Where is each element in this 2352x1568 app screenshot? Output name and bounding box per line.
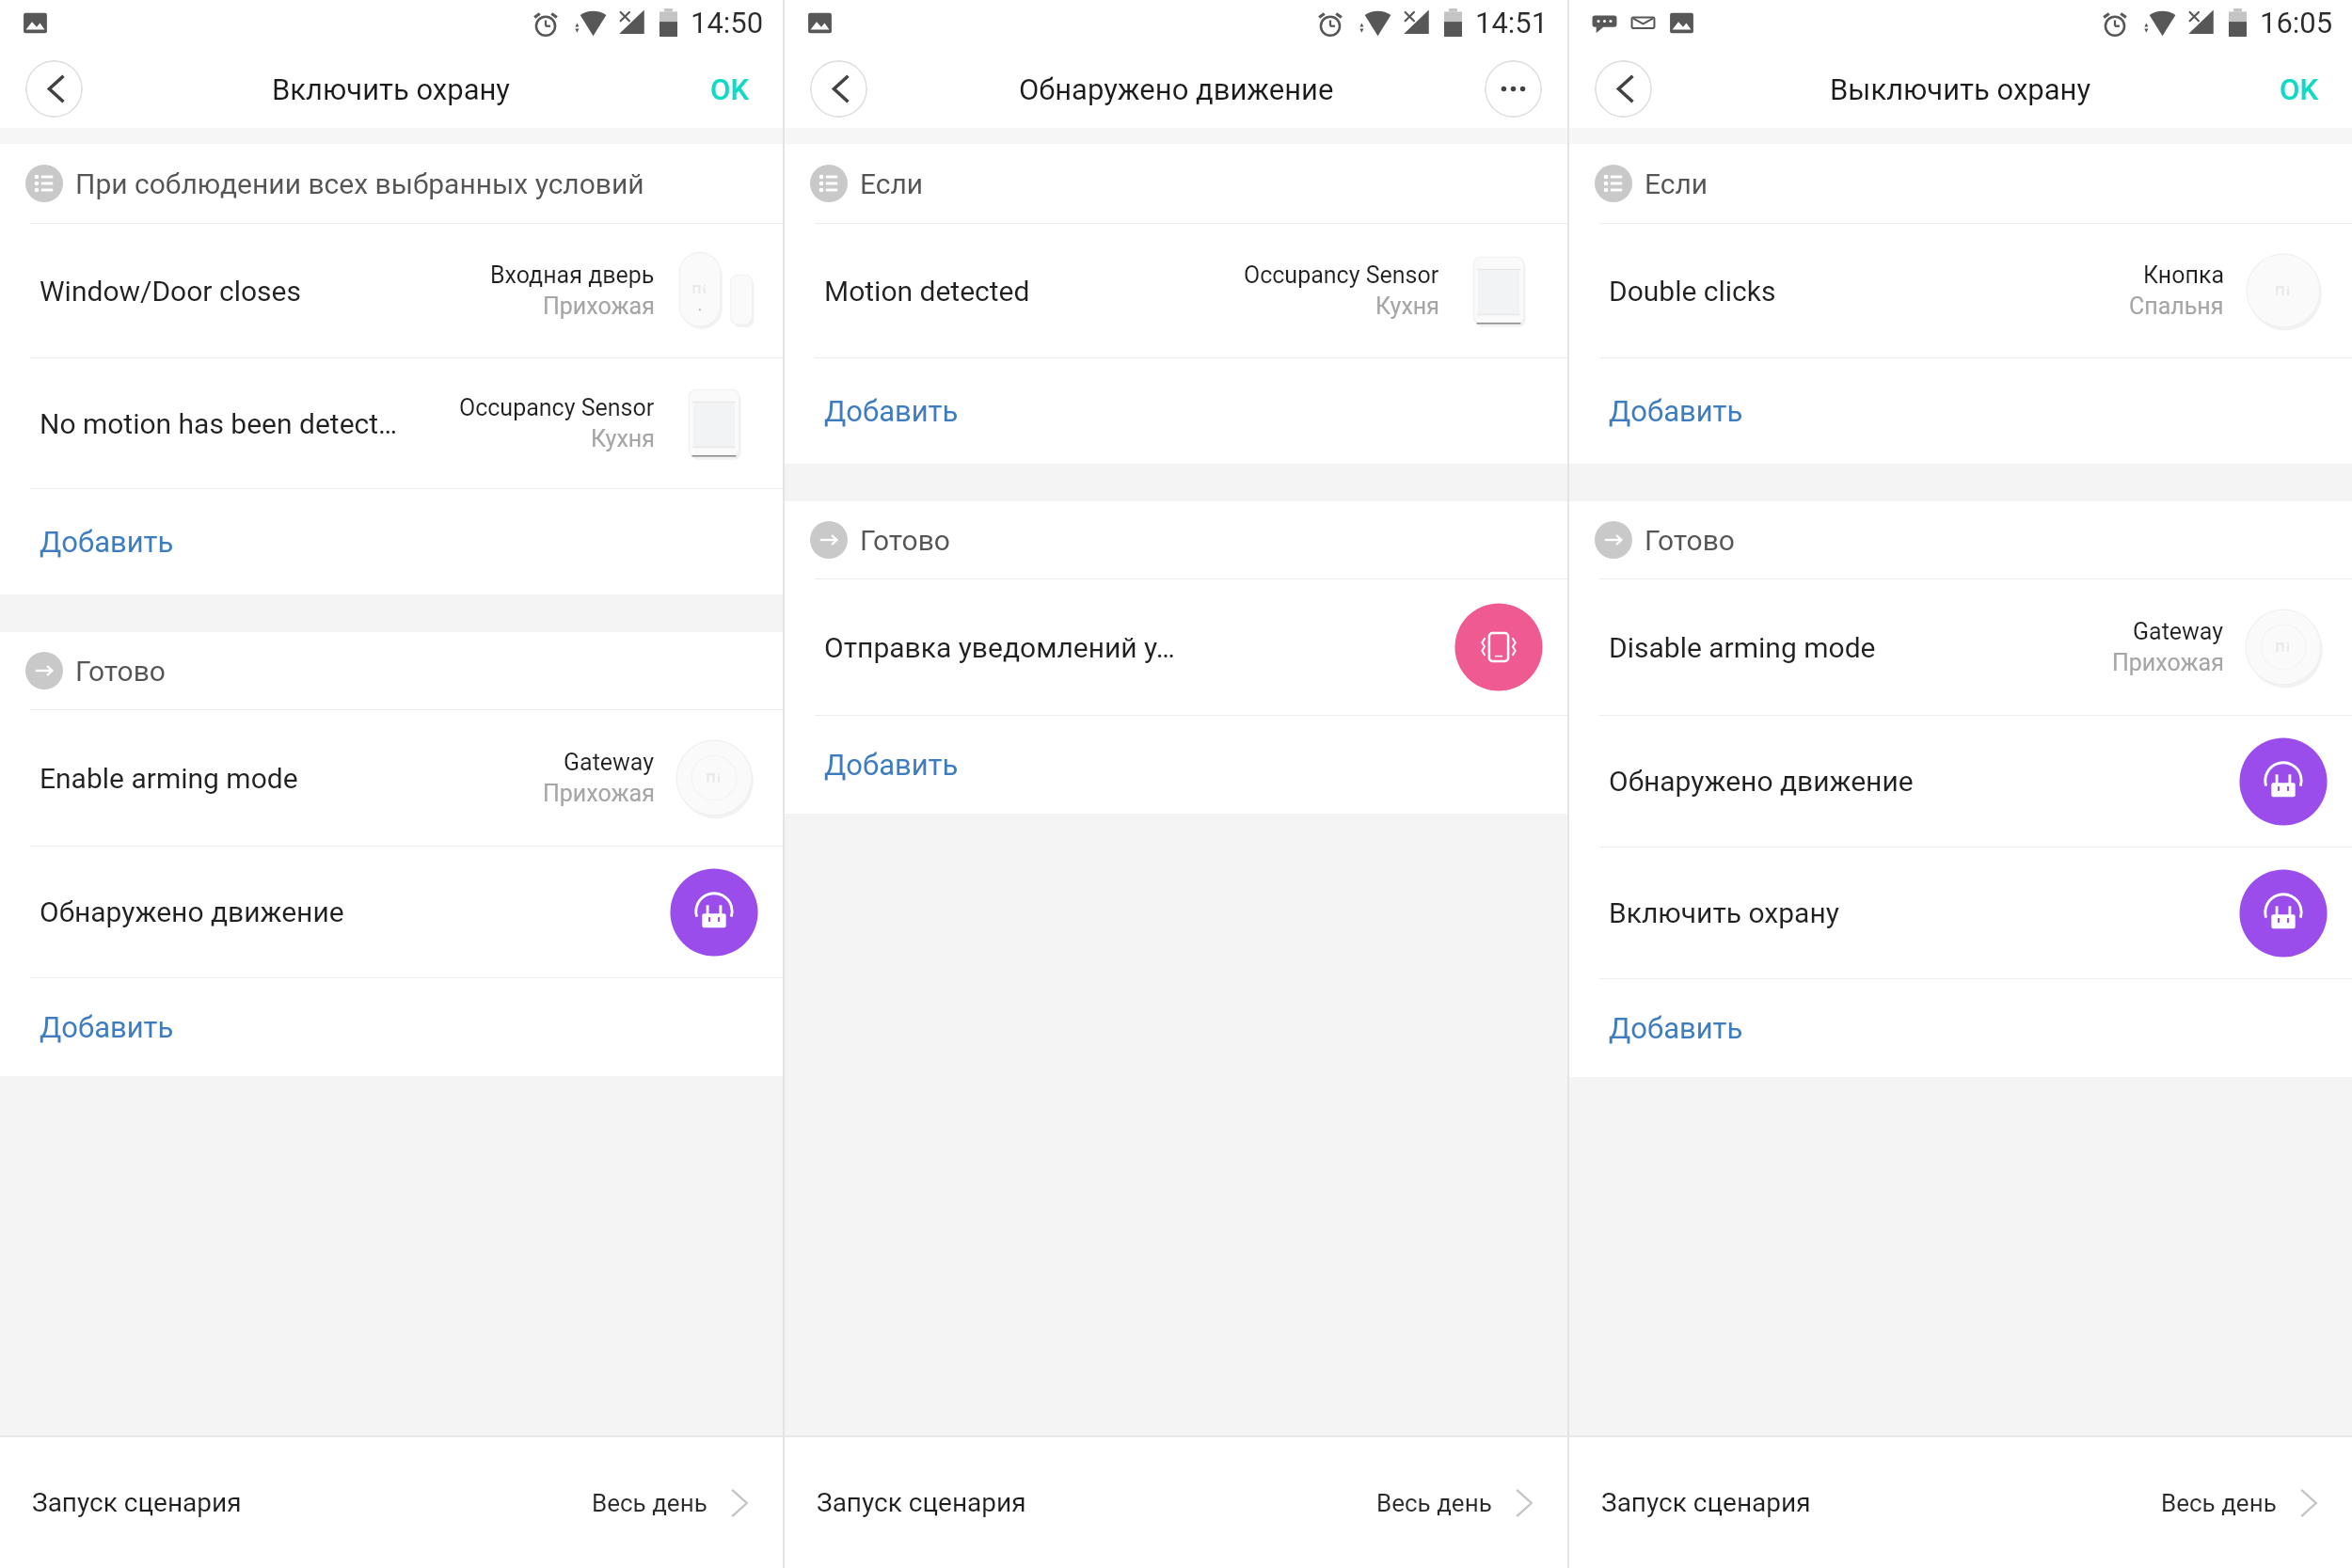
staticText: Добавить (824, 748, 959, 782)
button[interactable]: Back (25, 60, 83, 118)
staticText: Прихожая (543, 293, 655, 320)
button[interactable]: Обнаружено движение (1569, 716, 2352, 847)
button[interactable]: Window/Door closes (0, 224, 783, 357)
button[interactable]: Добавить (0, 978, 783, 1076)
staticText: Обнаружено движение (1609, 765, 1914, 798)
staticText: Запуск сценария (1601, 1487, 1811, 1518)
button[interactable]: Готово (1569, 501, 2352, 578)
button[interactable]: Back (1595, 60, 1652, 118)
staticText: Occupancy Sensor (1244, 261, 1439, 289)
button[interactable]: Если (785, 144, 1567, 223)
staticText: Прихожая (543, 780, 655, 807)
staticText: Кухня (1375, 293, 1439, 320)
button[interactable]: Включить охрану (1569, 847, 2352, 978)
button[interactable]: При соблюдении всех выбранных условий (0, 144, 783, 223)
staticText: Выключить охрану (1830, 72, 2091, 106)
button[interactable]: Готово (0, 632, 783, 709)
staticText: 14:50 (691, 6, 764, 40)
button[interactable]: Back (810, 60, 867, 118)
button[interactable]: Обнаружено движение (0, 847, 783, 977)
button[interactable]: Добавить (785, 358, 1567, 464)
staticText: Enable arming mode (40, 762, 298, 795)
staticText: Кухня (591, 425, 655, 452)
staticText: Обнаружено движение (1019, 72, 1334, 106)
staticText: 16:05 (2260, 6, 2333, 40)
staticText: Motion detected (824, 275, 1030, 308)
staticText: Добавить (40, 525, 174, 559)
button[interactable]: Double clicks (1569, 224, 2352, 357)
staticText: Кнопка (2143, 261, 2224, 289)
button[interactable]: Запуск сценария (785, 1437, 1567, 1568)
staticText: Включить охрану (272, 72, 511, 106)
button[interactable]: Отправка уведомлений у… (785, 579, 1567, 715)
staticText: Occupancy Sensor (459, 394, 655, 421)
staticText: Включить охрану (1609, 896, 1839, 929)
button[interactable]: Запуск сценария (0, 1437, 783, 1568)
staticText: Прихожая (2112, 649, 2224, 676)
staticText: При соблюдении всех выбранных условий (75, 167, 644, 200)
staticText: Обнаружено движение (40, 895, 344, 928)
staticText: Если (1645, 167, 1708, 200)
staticText: Добавить (40, 1010, 174, 1044)
button[interactable]: Enable arming mode (0, 710, 783, 846)
staticText: Gateway (2133, 618, 2224, 645)
button[interactable]: Добавить (0, 489, 783, 594)
staticText: No motion has been detect… (40, 407, 398, 440)
staticText: 14:51 (1475, 6, 1549, 40)
button[interactable]: More options (1485, 60, 1542, 118)
staticText: Добавить (1609, 394, 1743, 428)
staticText: Отправка уведомлений у… (824, 631, 1175, 664)
staticText: Запуск сценария (817, 1487, 1026, 1518)
staticText: OK (2280, 72, 2318, 106)
staticText: Готово (1645, 524, 1735, 557)
button[interactable]: Добавить (1569, 979, 2352, 1077)
staticText: Добавить (1609, 1011, 1743, 1045)
staticText: Готово (860, 524, 950, 557)
staticText: Gateway (564, 749, 655, 776)
staticText: Disable arming mode (1609, 631, 1876, 664)
staticText: Спальня (2129, 293, 2224, 320)
button[interactable]: No motion has been detect… (0, 358, 783, 488)
button[interactable]: Готово (785, 501, 1567, 578)
button[interactable]: OK (701, 65, 758, 114)
button[interactable]: Disable arming mode (1569, 579, 2352, 715)
staticText: OK (710, 72, 749, 106)
staticText: Double clicks (1609, 275, 1776, 308)
staticText: Если (860, 167, 924, 200)
button[interactable]: Motion detected (785, 224, 1567, 357)
staticText: Готово (75, 655, 166, 688)
button[interactable]: Запуск сценария (1569, 1437, 2352, 1568)
staticText: Весь день (2161, 1489, 2277, 1517)
button[interactable]: Добавить (1569, 358, 2352, 464)
staticText: Весь день (592, 1489, 707, 1517)
button[interactable]: OK (2270, 65, 2328, 114)
staticText: Window/Door closes (40, 275, 301, 308)
staticText: Добавить (824, 394, 959, 428)
button[interactable]: Добавить (785, 716, 1567, 814)
button[interactable]: Если (1569, 144, 2352, 223)
staticText: Весь день (1376, 1489, 1492, 1517)
staticText: Запуск сценария (32, 1487, 242, 1518)
staticText: Входная дверь (490, 261, 655, 289)
